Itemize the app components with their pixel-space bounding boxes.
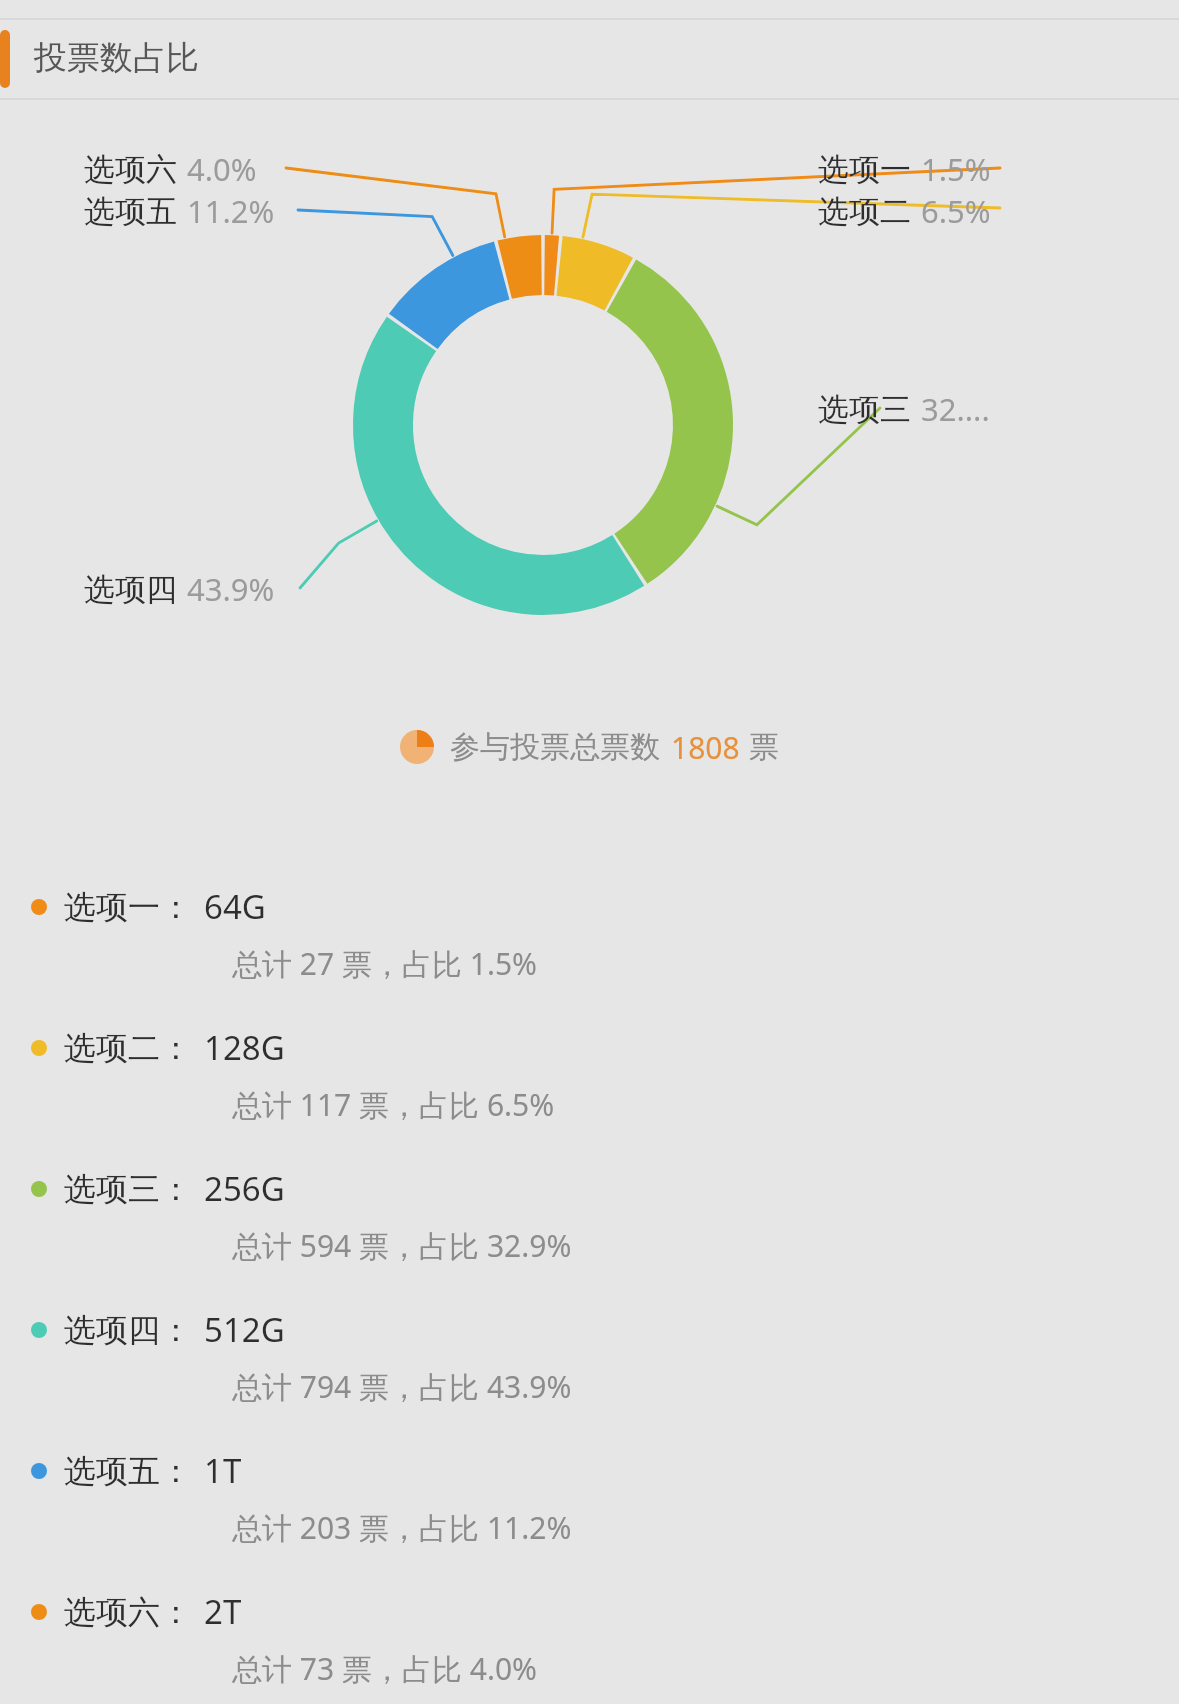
button[interactable]: 选项五： [0, 1448, 1179, 1548]
staticText: 票 [749, 728, 779, 766]
staticText: 11.2% [187, 190, 275, 232]
staticText: 32.... [921, 388, 990, 430]
staticText: 43.9% [187, 568, 275, 610]
other: Total votes [400, 730, 434, 764]
staticText: 参与投票总票数 [450, 728, 660, 766]
button[interactable]: 选项六 [84, 148, 257, 190]
staticText: 总计 594 票，占比 32.9% [232, 1225, 572, 1266]
staticText: 2T [204, 1589, 242, 1634]
staticText: 总计 203 票，占比 11.2% [232, 1507, 572, 1548]
staticText: 128G [204, 1025, 285, 1070]
staticText: 选项一： [64, 887, 192, 927]
staticText: 64G [204, 884, 266, 929]
button[interactable]: 选项一： [0, 884, 1179, 984]
staticText: 512G [204, 1307, 285, 1352]
staticText: 1808 [671, 727, 740, 768]
staticText: 总计 117 票，占比 6.5% [232, 1084, 555, 1125]
button[interactable]: 选项三 [818, 388, 990, 430]
staticText: 4.0% [187, 148, 257, 190]
button[interactable]: 选项四： [0, 1307, 1179, 1407]
button[interactable]: 选项二 [818, 190, 991, 232]
button[interactable]: Total votes [0, 718, 1179, 776]
staticText: 选项六： [64, 1592, 192, 1632]
staticText: 选项六 [84, 150, 177, 189]
staticText: 选项三 [818, 390, 911, 429]
staticText: 总计 73 票，占比 4.0% [232, 1648, 538, 1689]
button[interactable]: 选项五 [84, 190, 275, 232]
staticText: 选项四： [64, 1310, 192, 1350]
staticText: 1.5% [921, 148, 991, 190]
button[interactable]: 选项二： [0, 1025, 1179, 1125]
staticText: 选项一 [818, 150, 911, 189]
staticText: 投票数占比 [34, 37, 199, 79]
staticText: 6.5% [921, 190, 991, 232]
button[interactable]: 选项六： [0, 1589, 1179, 1689]
button[interactable]: 选项三： [0, 1166, 1179, 1266]
staticText: 选项二 [818, 192, 911, 231]
staticText: 选项四 [84, 570, 177, 609]
button[interactable]: 投票数占比 [0, 20, 1179, 98]
staticText: 选项五 [84, 192, 177, 231]
staticText: 总计 794 票，占比 43.9% [232, 1366, 572, 1407]
button[interactable]: 选项一 [818, 148, 991, 190]
staticText: 选项五： [64, 1451, 192, 1491]
button[interactable]: 选项四 [84, 568, 275, 610]
staticText: 选项三： [64, 1169, 192, 1209]
staticText: 选项二： [64, 1028, 192, 1068]
staticText: 总计 27 票，占比 1.5% [232, 943, 538, 984]
staticText: 1T [204, 1448, 242, 1493]
staticText: 256G [204, 1166, 285, 1211]
